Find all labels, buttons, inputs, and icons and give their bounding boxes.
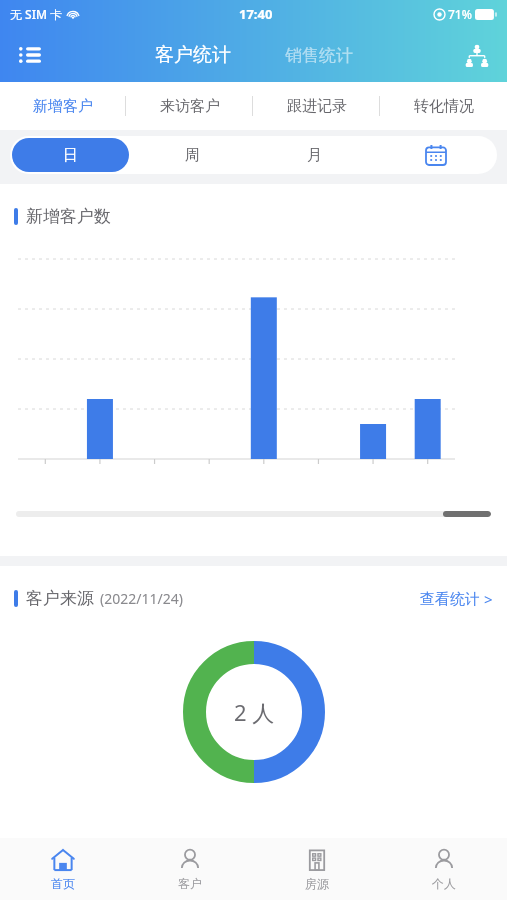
staticText: 新增客户	[33, 97, 93, 116]
staticText: (2022/11/24)	[100, 589, 183, 608]
staticText: 新增客户数	[26, 206, 111, 227]
button[interactable]: 查看统计	[420, 589, 493, 609]
button[interactable]: 周	[133, 138, 251, 172]
button[interactable]: Menu	[0, 28, 60, 82]
staticText: 个人	[432, 876, 456, 891]
staticText: 无 SIM 卡	[10, 6, 63, 22]
staticText: >	[484, 589, 493, 609]
button[interactable]: 房源	[253, 838, 380, 900]
staticText: 17:40	[239, 5, 273, 23]
staticText: 房源	[305, 876, 329, 891]
staticText: 来访客户	[160, 97, 220, 116]
button[interactable]: 首页	[0, 838, 126, 900]
staticText: 客户来源	[26, 588, 94, 609]
button[interactable]: Pick date	[375, 136, 497, 174]
button[interactable]: 个人	[380, 838, 507, 900]
staticText: 周	[185, 146, 200, 165]
button[interactable]: 新增客户	[0, 82, 126, 130]
staticText: 客户统计	[155, 43, 231, 67]
button[interactable]: 转化情况	[380, 82, 507, 130]
staticText: 转化情况	[414, 97, 474, 116]
button[interactable]: Organization	[447, 28, 507, 82]
staticText: 月	[307, 146, 322, 165]
staticText: 首页	[51, 876, 75, 891]
button[interactable]: 来访客户	[126, 82, 253, 130]
staticText: 销售统计	[285, 45, 353, 66]
staticText: 日	[63, 146, 78, 165]
staticText: 2 人	[234, 697, 275, 727]
button[interactable]: 日	[12, 138, 129, 172]
staticText: 客户	[178, 876, 202, 891]
button[interactable]: 跟进记录	[253, 82, 380, 130]
button[interactable]: 销售统计	[285, 45, 353, 66]
button[interactable]: 月	[255, 138, 373, 172]
button[interactable]: 客户	[126, 838, 253, 900]
staticText: 71%	[448, 6, 472, 22]
staticText: 跟进记录	[287, 97, 347, 116]
staticText: 查看统计	[420, 590, 480, 609]
button[interactable]: 客户统计	[155, 43, 231, 67]
